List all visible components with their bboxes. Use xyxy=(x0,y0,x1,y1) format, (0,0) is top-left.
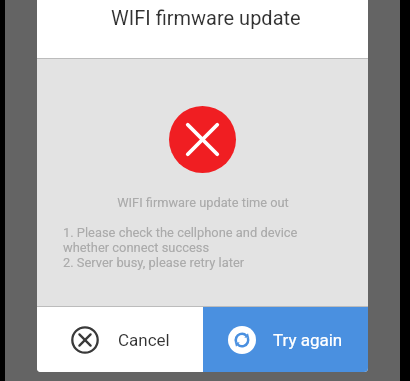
staticText: WIFI firmware update time out xyxy=(117,195,289,210)
staticText: Cancel xyxy=(118,330,170,350)
staticText: 1. Please check the cellphone and device… xyxy=(63,225,298,270)
button[interactable]: Cancel xyxy=(37,307,203,372)
button[interactable]: Try again xyxy=(203,307,368,372)
staticText: Try again xyxy=(273,330,343,350)
staticText: WIFI firmware update xyxy=(111,6,301,29)
